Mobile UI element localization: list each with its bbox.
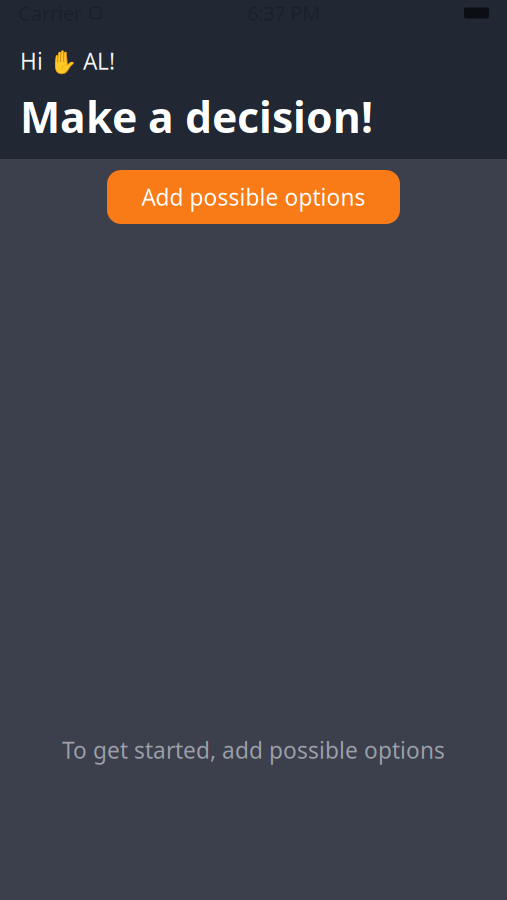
- staticText: Hi ✋ AL!: [20, 46, 115, 76]
- staticText: To get started, add possible options: [62, 735, 445, 765]
- staticText: Add possible options: [141, 182, 365, 212]
- staticText: Carrier: [18, 0, 82, 26]
- staticText: 6:37 PM: [247, 0, 320, 26]
- staticText: Make a decision!: [20, 88, 373, 145]
- button[interactable]: Add possible options: [107, 170, 400, 224]
